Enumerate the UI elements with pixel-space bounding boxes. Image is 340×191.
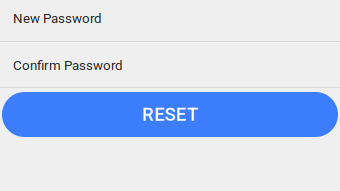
staticText: New Password (13, 11, 102, 26)
button[interactable]: Confirm Password (0, 42, 340, 87)
button[interactable]: RESET (2, 92, 338, 137)
staticText: Confirm Password (13, 58, 123, 73)
staticText: RESET (142, 104, 198, 125)
button[interactable]: New Password (0, 0, 340, 41)
